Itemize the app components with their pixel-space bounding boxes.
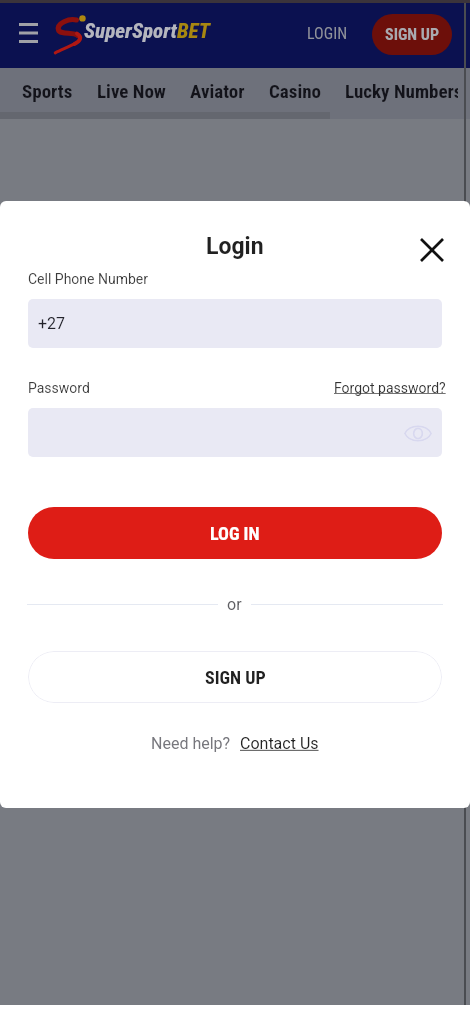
- button[interactable]: LOGIN: [299, 16, 356, 51]
- staticText: SIGN UP: [205, 667, 266, 688]
- staticText: BET: [177, 19, 210, 44]
- button[interactable]: SIGN UP: [28, 651, 442, 703]
- button[interactable]: LOG IN: [28, 507, 442, 559]
- staticText: Cell Phone Number: [28, 271, 148, 287]
- staticText: Live Now: [97, 80, 166, 102]
- button[interactable]: SIGN UP: [372, 14, 452, 55]
- staticText: +27: [38, 314, 66, 333]
- button[interactable]: Show password: [402, 417, 434, 449]
- button[interactable]: Sports: [10, 68, 85, 113]
- staticText: Password: [28, 380, 90, 396]
- button[interactable]: Contact Us: [240, 734, 319, 753]
- button[interactable]: Casino: [257, 68, 333, 113]
- button[interactable]: Live Now: [85, 68, 178, 113]
- staticText: Need help?: [151, 734, 231, 753]
- button[interactable]: Forgot password?: [326, 372, 454, 404]
- button[interactable]: Lucky Numbers: [333, 68, 470, 113]
- staticText: Sports: [22, 80, 73, 102]
- button[interactable]: Menu: [12, 17, 44, 49]
- staticText: SIGN UP: [385, 25, 440, 44]
- staticText: Casino: [269, 80, 321, 102]
- staticText: Contact Us: [240, 734, 319, 753]
- staticText: Aviator: [190, 80, 245, 102]
- staticText: Forgot password?: [334, 380, 446, 396]
- staticText: Login: [206, 233, 264, 260]
- button[interactable]: Aviator: [178, 68, 257, 113]
- button[interactable]: +27: [28, 299, 442, 348]
- staticText: SuperSport: [84, 19, 177, 44]
- staticText: or: [227, 595, 242, 614]
- button[interactable]: Close: [412, 230, 452, 270]
- staticText: LOG IN: [210, 523, 260, 544]
- staticText: LOGIN: [307, 24, 348, 43]
- staticText: Lucky Numbers: [345, 80, 458, 102]
